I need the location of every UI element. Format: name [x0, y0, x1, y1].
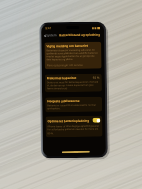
staticText: System: [46, 33, 57, 37]
button[interactable]: Back to System: [43, 33, 57, 37]
staticText: Flere oplysninger om service: [47, 63, 84, 67]
staticText: Vigtig melding om batteriet: [46, 44, 88, 48]
staticText: 92 %: [93, 76, 100, 80]
staticText: Dette er et maal for batterikapaciteten …: [47, 81, 100, 90]
staticText: iPhone laerer af dine daglige opladnings…: [47, 124, 101, 135]
staticText: Optimeret batteriopladning: [47, 119, 89, 123]
staticText: 9:41: [45, 26, 52, 30]
button[interactable]: Optimeret batteriopladning: [92, 118, 100, 123]
staticText: Hoejeste ydelsesevne: [47, 99, 80, 103]
button[interactable]: Vigtig melding om batteriet: [44, 42, 102, 69]
staticText: Batteriets tilstand er vaesentlig reduce…: [46, 49, 100, 61]
staticText: Batteriet er i stand til at understoette…: [47, 104, 100, 110]
staticText: Batteritilstand og opladning: [59, 33, 100, 37]
button[interactable]: Maksimal kapacitet: [45, 74, 102, 92]
button[interactable]: Optimeret batteriopladning: [45, 116, 103, 137]
button[interactable]: Hoejeste ydelsesevne: [45, 97, 102, 112]
staticText: Maksimal kapacitet: [47, 76, 77, 80]
